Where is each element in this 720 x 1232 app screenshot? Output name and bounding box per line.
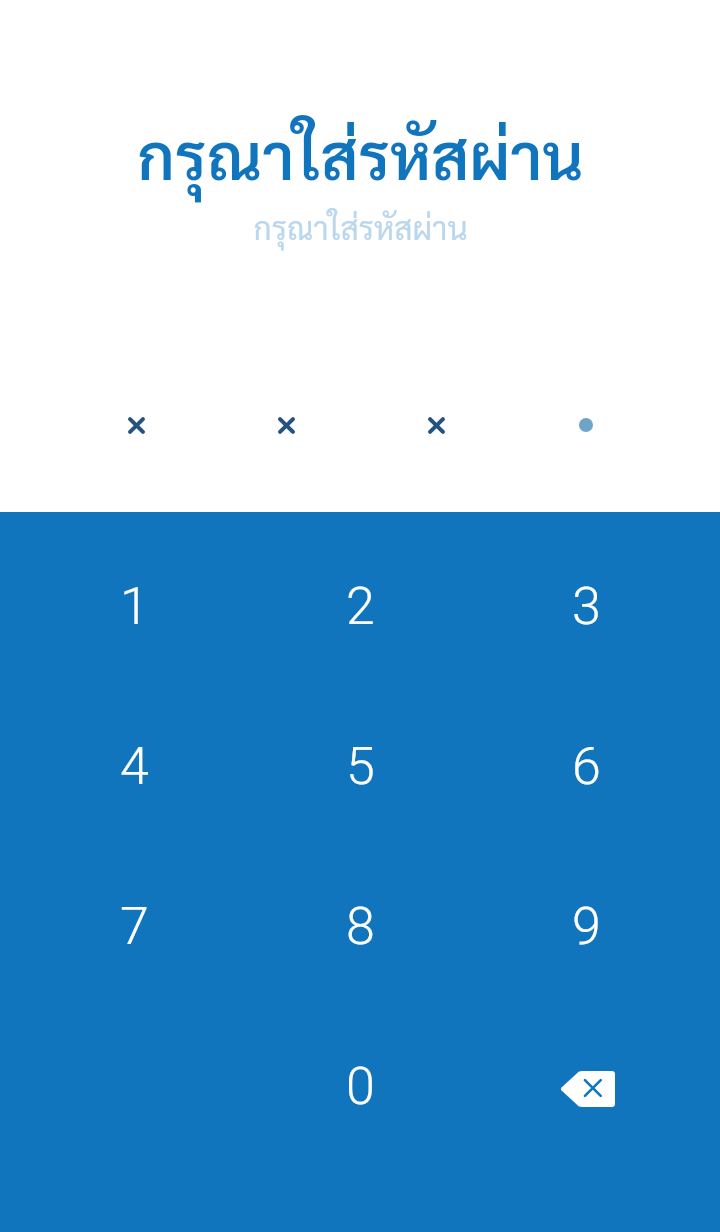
button[interactable]: 9 [473, 846, 699, 1006]
button[interactable]: 0 [247, 1006, 473, 1166]
staticText: 6 [572, 736, 601, 797]
button[interactable]: 2 [247, 526, 473, 686]
staticText: กรุณาใส่รหัสผ่าน [137, 112, 584, 195]
staticText: 1 [120, 576, 149, 637]
other: Backspace [555, 1055, 617, 1117]
staticText: 3 [572, 576, 601, 637]
button[interactable]: 8 [247, 846, 473, 1006]
button[interactable]: Backspace [473, 1006, 699, 1166]
button[interactable]: 6 [473, 686, 699, 846]
button[interactable]: 5 [247, 686, 473, 846]
staticText: 8 [346, 896, 375, 957]
staticText: 9 [572, 896, 601, 957]
staticText: กรุณาใส่รหัสผ่าน [253, 206, 468, 247]
staticText: 0 [346, 1056, 375, 1117]
button[interactable]: 3 [473, 526, 699, 686]
staticText: 5 [346, 736, 375, 797]
staticText: 4 [120, 736, 149, 797]
button[interactable]: 7 [21, 846, 247, 1006]
button[interactable]: 1 [21, 526, 247, 686]
staticText: 2 [346, 576, 375, 637]
staticText: 7 [120, 896, 149, 957]
button[interactable]: 4 [21, 686, 247, 846]
